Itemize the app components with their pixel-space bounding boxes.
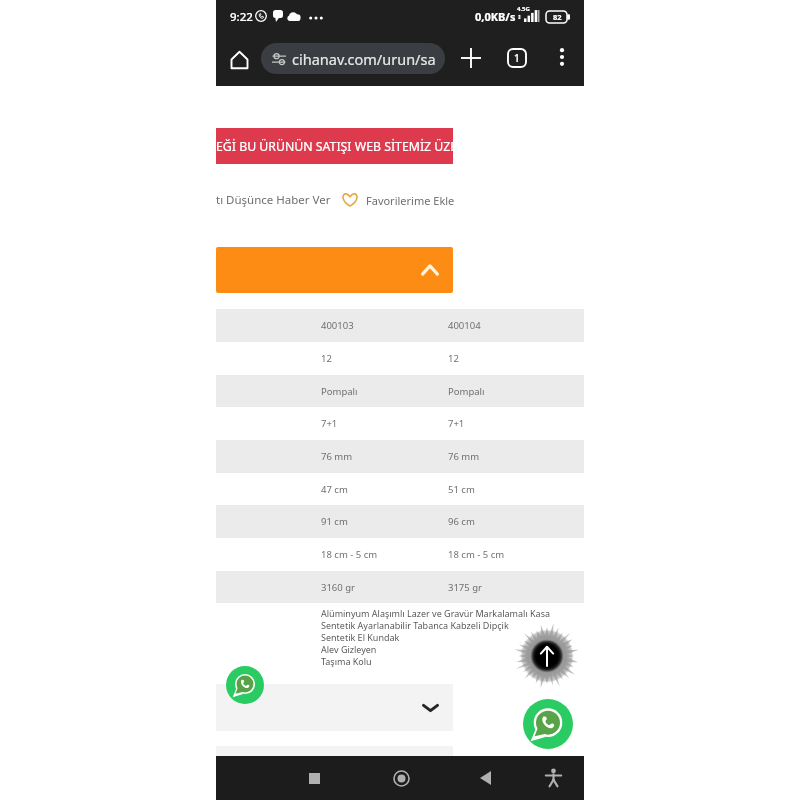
staticText: 9:22 [230, 9, 253, 25]
button[interactable]: Home [383, 760, 419, 796]
button[interactable]: Back [467, 760, 503, 796]
staticText: 400104 [448, 319, 481, 332]
staticText: EĞİ BU ÜRÜNÜN SATIŞI WEB SİTEMİZ ÜZE [216, 138, 453, 155]
button[interactable]: Home [223, 44, 255, 76]
staticText: 82 [553, 12, 562, 22]
button[interactable]: EĞİ BU ÜRÜNÜN SATIŞI WEB SİTEMİZ ÜZE [216, 128, 453, 164]
button[interactable]: Scroll to top [514, 623, 580, 689]
staticText: Sentetik El Kundak [321, 631, 400, 643]
button[interactable]: cihanav.com/urun/sa [261, 43, 445, 74]
staticText: Alüminyum Alaşımlı Lazer ve Gravür Marka… [321, 607, 551, 619]
staticText: ↕ [517, 14, 522, 20]
staticText: 3160 gr [321, 581, 355, 594]
staticText: 76 mm [321, 450, 353, 463]
button[interactable]: Recent apps [296, 760, 332, 796]
button[interactable]: Expand section [216, 684, 453, 731]
button[interactable]: Favorilerime Ekle [341, 192, 455, 208]
button[interactable]: WhatsApp [226, 666, 264, 704]
staticText: 12 [321, 352, 332, 365]
button[interactable]: 12 [216, 342, 584, 375]
staticText: Taşıma Kolu [321, 655, 372, 667]
button[interactable]: Pompalı [216, 375, 584, 407]
staticText: 96 cm [448, 515, 475, 528]
staticText: tı Düşünce Haber Ver [216, 192, 331, 208]
staticText: 18 cm - 5 cm [448, 548, 505, 561]
button[interactable]: Accessibility menu [535, 760, 571, 796]
button[interactable]: 400103 [216, 309, 584, 342]
staticText: Pompalı [448, 385, 485, 398]
staticText: Sentetik Ayarlanabilir Tabanca Kabzeli D… [321, 619, 509, 631]
staticText: cihanav.com/urun/sa [292, 49, 436, 69]
staticText: 76 mm [448, 450, 480, 463]
staticText: 51 cm [448, 483, 475, 496]
staticText: 7+1 [448, 417, 465, 430]
staticText: 18 cm - 5 cm [321, 548, 378, 561]
button[interactable]: More options [548, 43, 576, 71]
staticText: 47 cm [321, 483, 348, 496]
button[interactable]: Open tabs [502, 43, 532, 73]
staticText: 0,0KB/s [475, 9, 516, 24]
button[interactable]: Contact on WhatsApp [523, 699, 573, 749]
staticText: Favorilerime Ekle [366, 193, 455, 208]
staticText: 12 [448, 352, 459, 365]
staticText: 3175 gr [448, 581, 482, 594]
staticText: 7+1 [321, 417, 338, 430]
button[interactable]: 91 cm [216, 505, 584, 538]
staticText: 91 cm [321, 515, 348, 528]
button[interactable]: 7+1 [216, 407, 584, 440]
button[interactable]: 47 cm [216, 473, 584, 505]
button[interactable]: Collapse section [216, 247, 453, 293]
staticText: 4.5G [517, 5, 530, 13]
staticText: Pompalı [321, 385, 358, 398]
button[interactable]: 76 mm [216, 440, 584, 473]
staticText: 1 [514, 51, 520, 65]
button[interactable]: New tab [456, 43, 486, 73]
button[interactable]: 18 cm - 5 cm [216, 538, 584, 571]
staticText: 400103 [321, 319, 354, 332]
staticText: Alev Gizleyen [321, 643, 377, 655]
button[interactable]: tı Düşünce Haber Ver [216, 192, 331, 208]
button[interactable]: 3160 gr [216, 571, 584, 603]
